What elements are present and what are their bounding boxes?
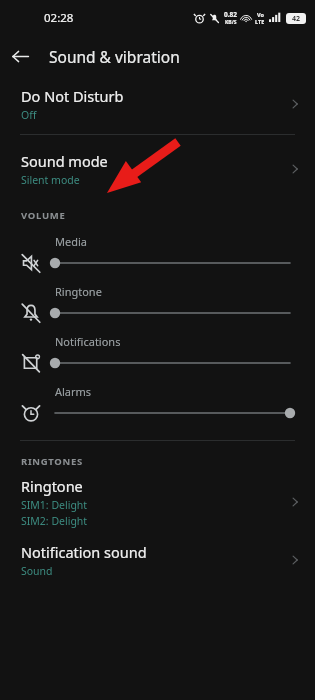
staticText: Ringtone — [21, 476, 83, 496]
staticText: SIM1: Delight — [21, 498, 88, 512]
staticText: Ringtone — [55, 284, 102, 299]
button[interactable]: Sound mode — [0, 151, 315, 187]
staticText: Sound & vibration — [49, 46, 180, 67]
staticText: Notifications — [55, 334, 121, 349]
staticText: 02:28 — [44, 10, 74, 26]
button[interactable]: Ringtone — [0, 282, 315, 332]
staticText: Do Not Disturb — [21, 86, 124, 106]
button[interactable]: Media — [0, 232, 315, 282]
staticText: VOLUME — [21, 209, 66, 222]
staticText: LTE — [255, 18, 265, 25]
staticText: KB/S — [225, 19, 237, 26]
button[interactable]: Alarms — [0, 382, 315, 432]
staticText: 0.82 — [224, 10, 237, 19]
staticText: Off — [21, 108, 37, 122]
staticText: RINGTONES — [21, 455, 83, 468]
staticText: Sound — [21, 564, 53, 578]
button[interactable]: Ringtone — [0, 476, 315, 528]
button[interactable]: Notification sound — [0, 542, 315, 578]
staticText: SIM2: Delight — [21, 514, 88, 528]
staticText: 42 — [292, 14, 301, 24]
staticText: Notification sound — [21, 542, 147, 562]
button[interactable]: Do Not Disturb — [0, 86, 315, 122]
button[interactable]: Notifications — [0, 332, 315, 382]
staticText: Silent mode — [21, 173, 80, 187]
staticText: Alarms — [55, 384, 92, 399]
staticText: Media — [55, 234, 87, 249]
button[interactable]: Back — [0, 36, 40, 76]
staticText: Vo — [257, 11, 264, 18]
staticText: Sound mode — [21, 151, 108, 171]
